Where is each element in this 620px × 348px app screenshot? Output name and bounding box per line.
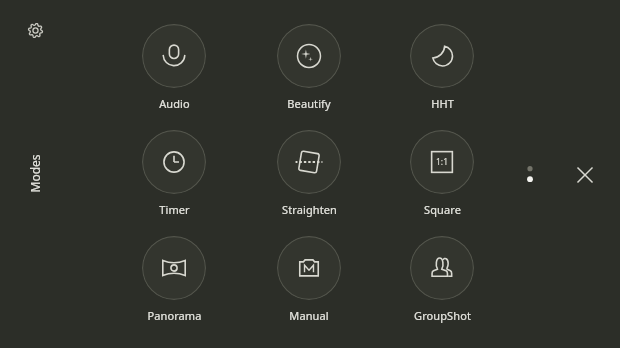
staticText: Modes: [26, 153, 42, 192]
button[interactable]: GroupShot: [380, 236, 504, 324]
button[interactable]: Audio: [112, 24, 236, 112]
button[interactable]: Manual: [247, 236, 371, 324]
staticText: 1:1: [436, 156, 449, 168]
staticText: Square: [424, 202, 461, 217]
button[interactable]: Modes: [11, 150, 57, 196]
staticText: Panorama: [147, 308, 202, 323]
staticText: HHT: [431, 96, 454, 111]
button[interactable]: Beautify: [247, 24, 371, 112]
button[interactable]: HHT: [380, 24, 504, 112]
button[interactable]: Settings: [21, 16, 49, 44]
staticText: Straighten: [282, 202, 337, 217]
button[interactable]: Straighten: [247, 130, 371, 218]
button[interactable]: Panorama: [112, 236, 236, 324]
staticText: Manual: [289, 308, 329, 323]
button[interactable]: Page indicator: [518, 156, 542, 194]
staticText: GroupShot: [414, 308, 471, 323]
button[interactable]: 1:1: [380, 130, 504, 218]
staticText: Timer: [159, 202, 190, 217]
staticText: Beautify: [287, 96, 331, 111]
button[interactable]: Timer: [112, 130, 236, 218]
button[interactable]: Close: [567, 157, 602, 192]
staticText: Audio: [159, 96, 190, 111]
